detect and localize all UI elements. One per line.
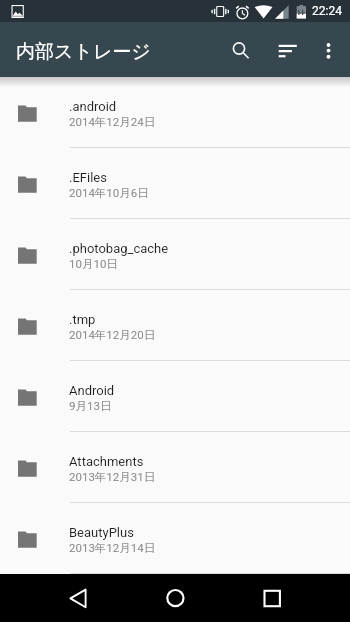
staticText: Attachments — [69, 454, 144, 469]
staticText: 2014年10月6日 — [69, 186, 149, 200]
staticText: .EFiles — [69, 170, 107, 185]
button[interactable]: .photobag_cache — [0, 219, 350, 290]
button[interactable]: Android — [0, 361, 350, 432]
staticText: 10月10日 — [69, 257, 118, 271]
staticText: BeautyPlus — [69, 525, 134, 540]
button[interactable]: Sort — [268, 26, 308, 72]
staticText: 内部ストレージ — [16, 40, 151, 64]
button[interactable]: Back — [54, 574, 102, 622]
staticText: Android — [69, 383, 115, 398]
staticText: 2014年12月20日 — [69, 328, 156, 342]
staticText: 2014年12月24日 — [69, 115, 156, 129]
button[interactable]: .android — [0, 77, 350, 148]
staticText: .android — [69, 99, 117, 114]
button[interactable]: More options — [314, 26, 344, 72]
staticText: 22:24 — [312, 4, 342, 18]
button[interactable]: Attachments — [0, 432, 350, 503]
staticText: .photobag_cache — [69, 241, 169, 256]
staticText: 2013年12月14日 — [69, 541, 156, 555]
button[interactable]: Search — [223, 26, 255, 72]
button[interactable]: BeautyPlus — [0, 503, 350, 574]
button[interactable]: Recent apps — [248, 574, 296, 622]
button[interactable]: .tmp — [0, 290, 350, 361]
button[interactable]: .EFiles — [0, 148, 350, 219]
button[interactable]: Home — [151, 574, 199, 622]
staticText: 2013年12月31日 — [69, 470, 156, 484]
staticText: 9月13日 — [69, 399, 112, 413]
staticText: .tmp — [69, 312, 96, 327]
